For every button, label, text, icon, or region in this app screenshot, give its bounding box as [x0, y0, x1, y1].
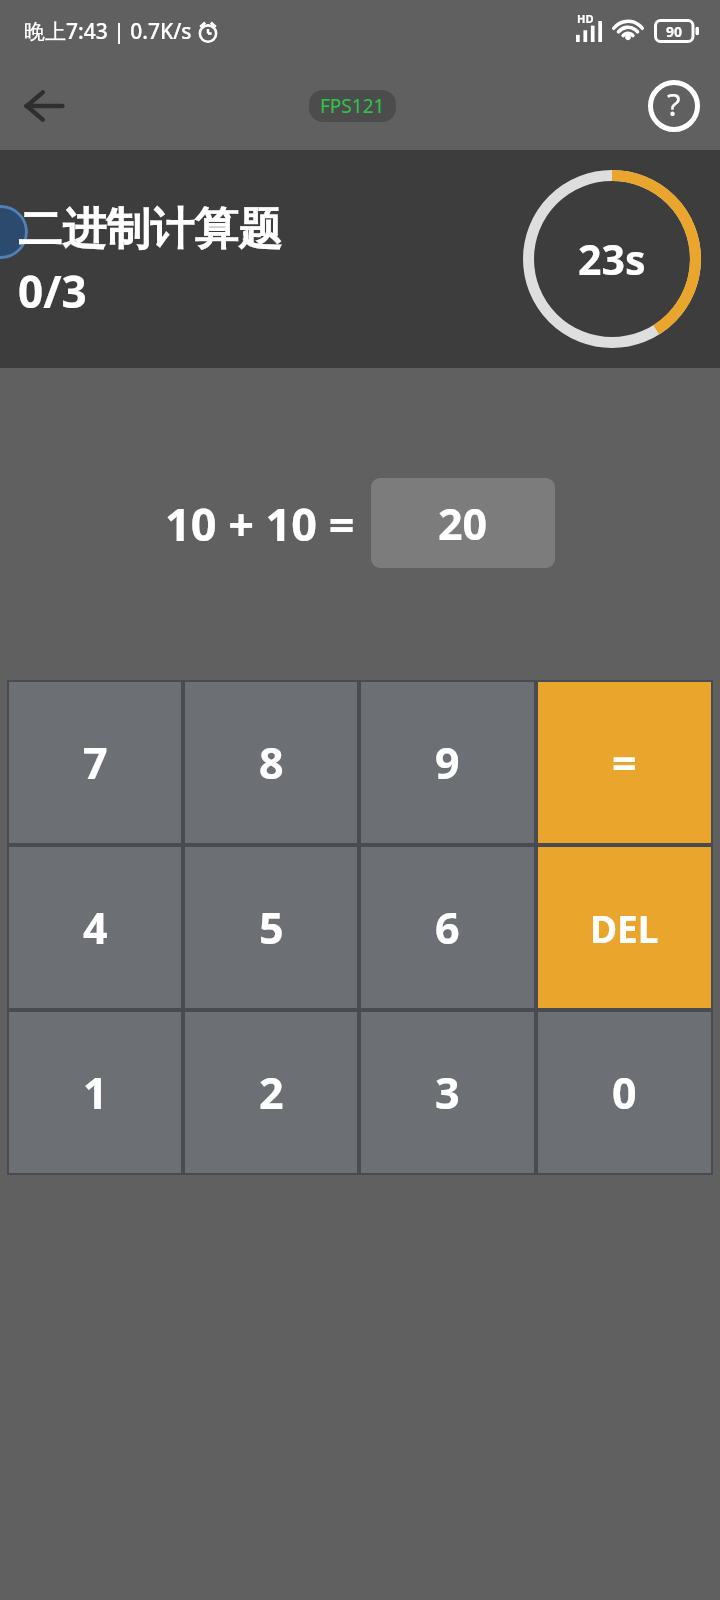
button[interactable]: 3: [361, 1012, 534, 1173]
button[interactable]: Back: [14, 76, 74, 136]
button[interactable]: 5: [185, 847, 357, 1008]
button[interactable]: 20: [371, 478, 555, 568]
staticText: 6: [435, 898, 460, 957]
staticText: 9: [435, 733, 460, 792]
staticText: 90: [666, 22, 683, 41]
button[interactable]: 1: [9, 1012, 181, 1173]
button[interactable]: 8: [185, 682, 357, 843]
staticText: 晚上7:43 | 0.7K/s: [24, 17, 192, 46]
staticText: ?: [667, 83, 681, 125]
button[interactable]: =: [538, 682, 711, 843]
staticText: 4: [83, 898, 108, 957]
staticText: 2: [259, 1063, 284, 1122]
button[interactable]: 9: [361, 682, 534, 843]
staticText: 10 + 10 =: [165, 493, 355, 554]
staticText: 8: [259, 733, 284, 792]
staticText: 1: [83, 1063, 108, 1122]
staticText: 0/3: [18, 261, 87, 321]
staticText: 0: [612, 1063, 637, 1122]
staticText: DEL: [590, 903, 659, 953]
button[interactable]: Help: [644, 76, 704, 136]
staticText: 3: [435, 1063, 460, 1122]
staticText: 7: [83, 733, 108, 792]
staticText: 20: [438, 494, 488, 553]
button[interactable]: 4: [9, 847, 181, 1008]
staticText: HD: [577, 11, 594, 26]
staticText: FPS121: [320, 93, 385, 119]
button[interactable]: DEL: [538, 847, 711, 1008]
staticText: 23s: [578, 231, 646, 287]
staticText: =: [612, 733, 637, 792]
button[interactable]: 0: [538, 1012, 711, 1173]
button[interactable]: 7: [9, 682, 181, 843]
staticText: 5: [259, 898, 284, 957]
button[interactable]: 6: [361, 847, 534, 1008]
staticText: 二进制计算题: [18, 202, 282, 257]
button[interactable]: 2: [185, 1012, 357, 1173]
